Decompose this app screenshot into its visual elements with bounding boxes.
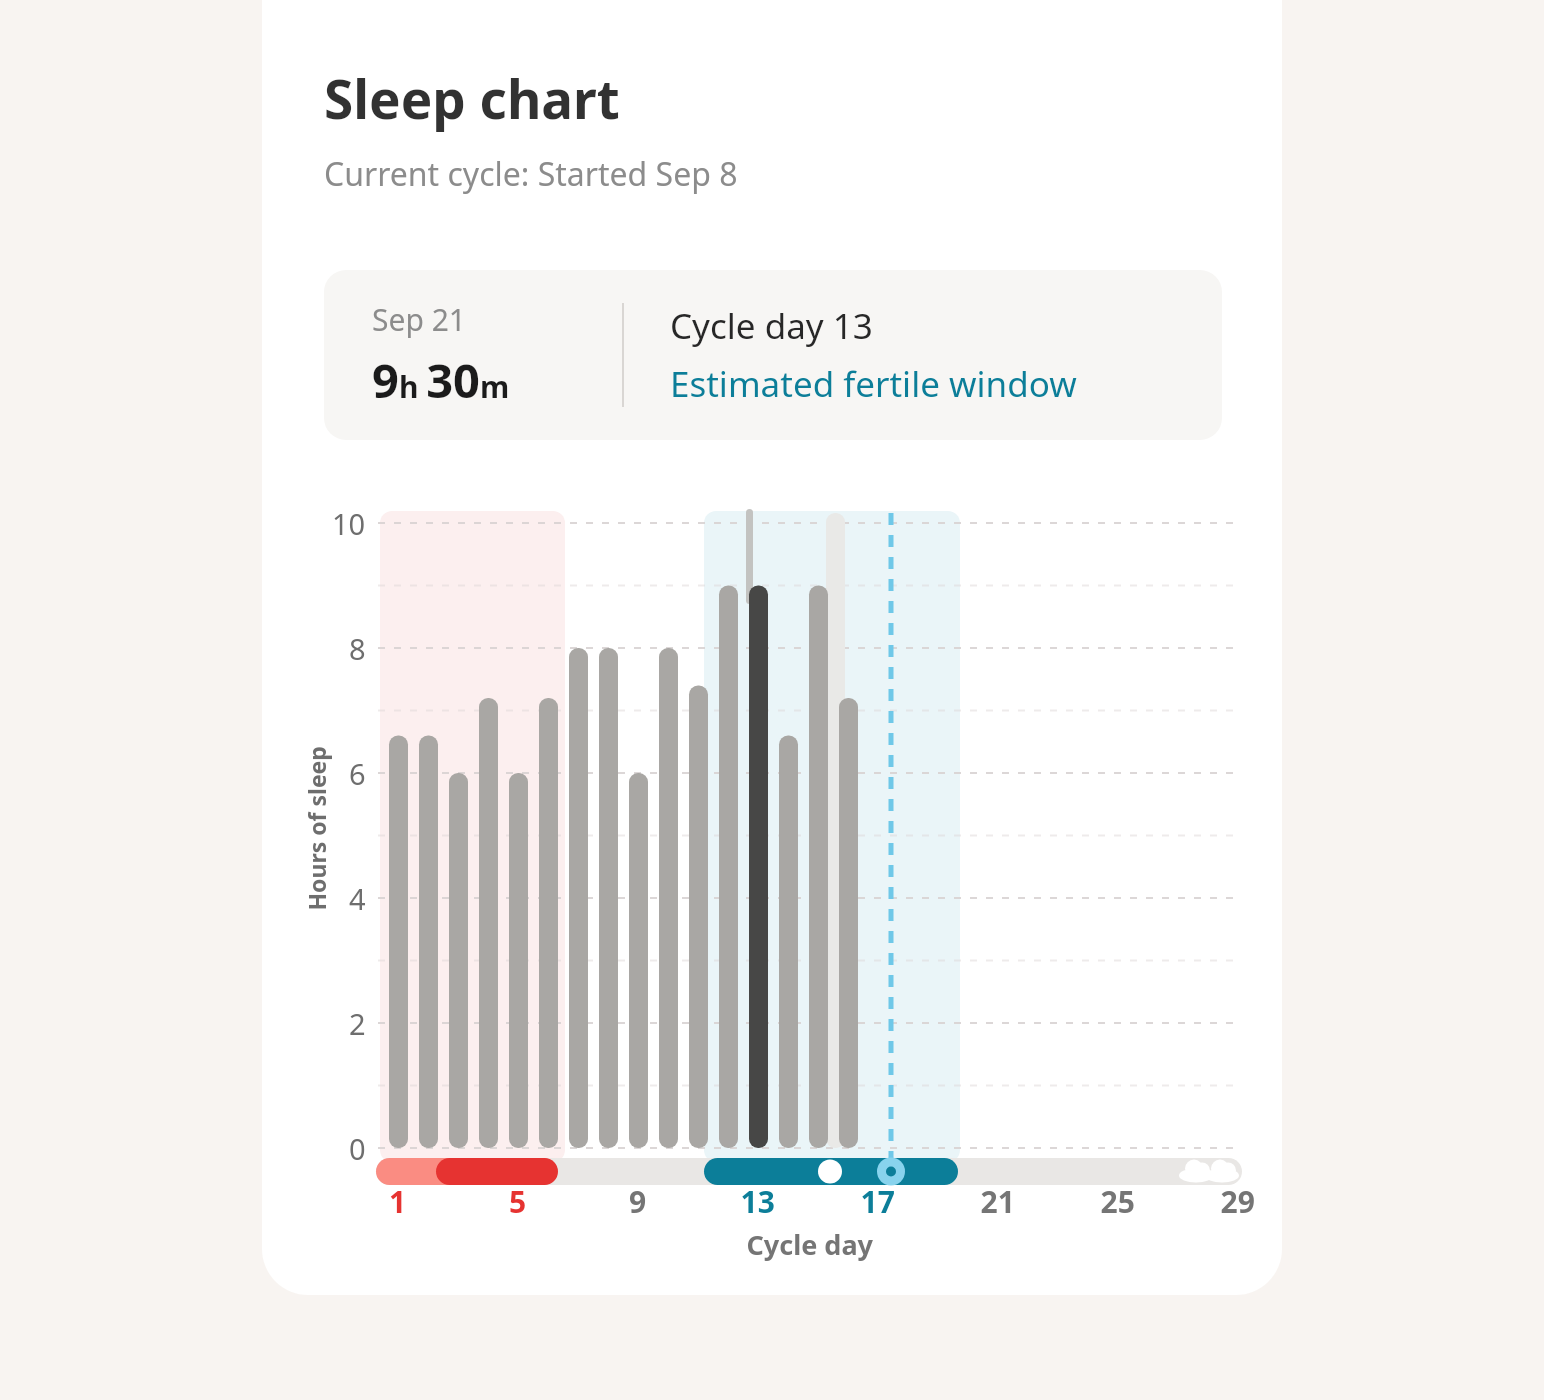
staticText: Current cycle: Started Sep 8 xyxy=(324,152,738,196)
staticText: Sleep chart xyxy=(324,62,620,134)
staticText: Cycle day 13 xyxy=(670,302,873,350)
staticText: Sep 21 xyxy=(372,299,466,340)
button[interactable]: Sep 21 xyxy=(324,270,1222,440)
staticText: Estimated fertile window xyxy=(670,360,1077,408)
staticText: 9h 30m xyxy=(372,348,510,412)
other: Sleep chart xyxy=(0,0,1544,1400)
